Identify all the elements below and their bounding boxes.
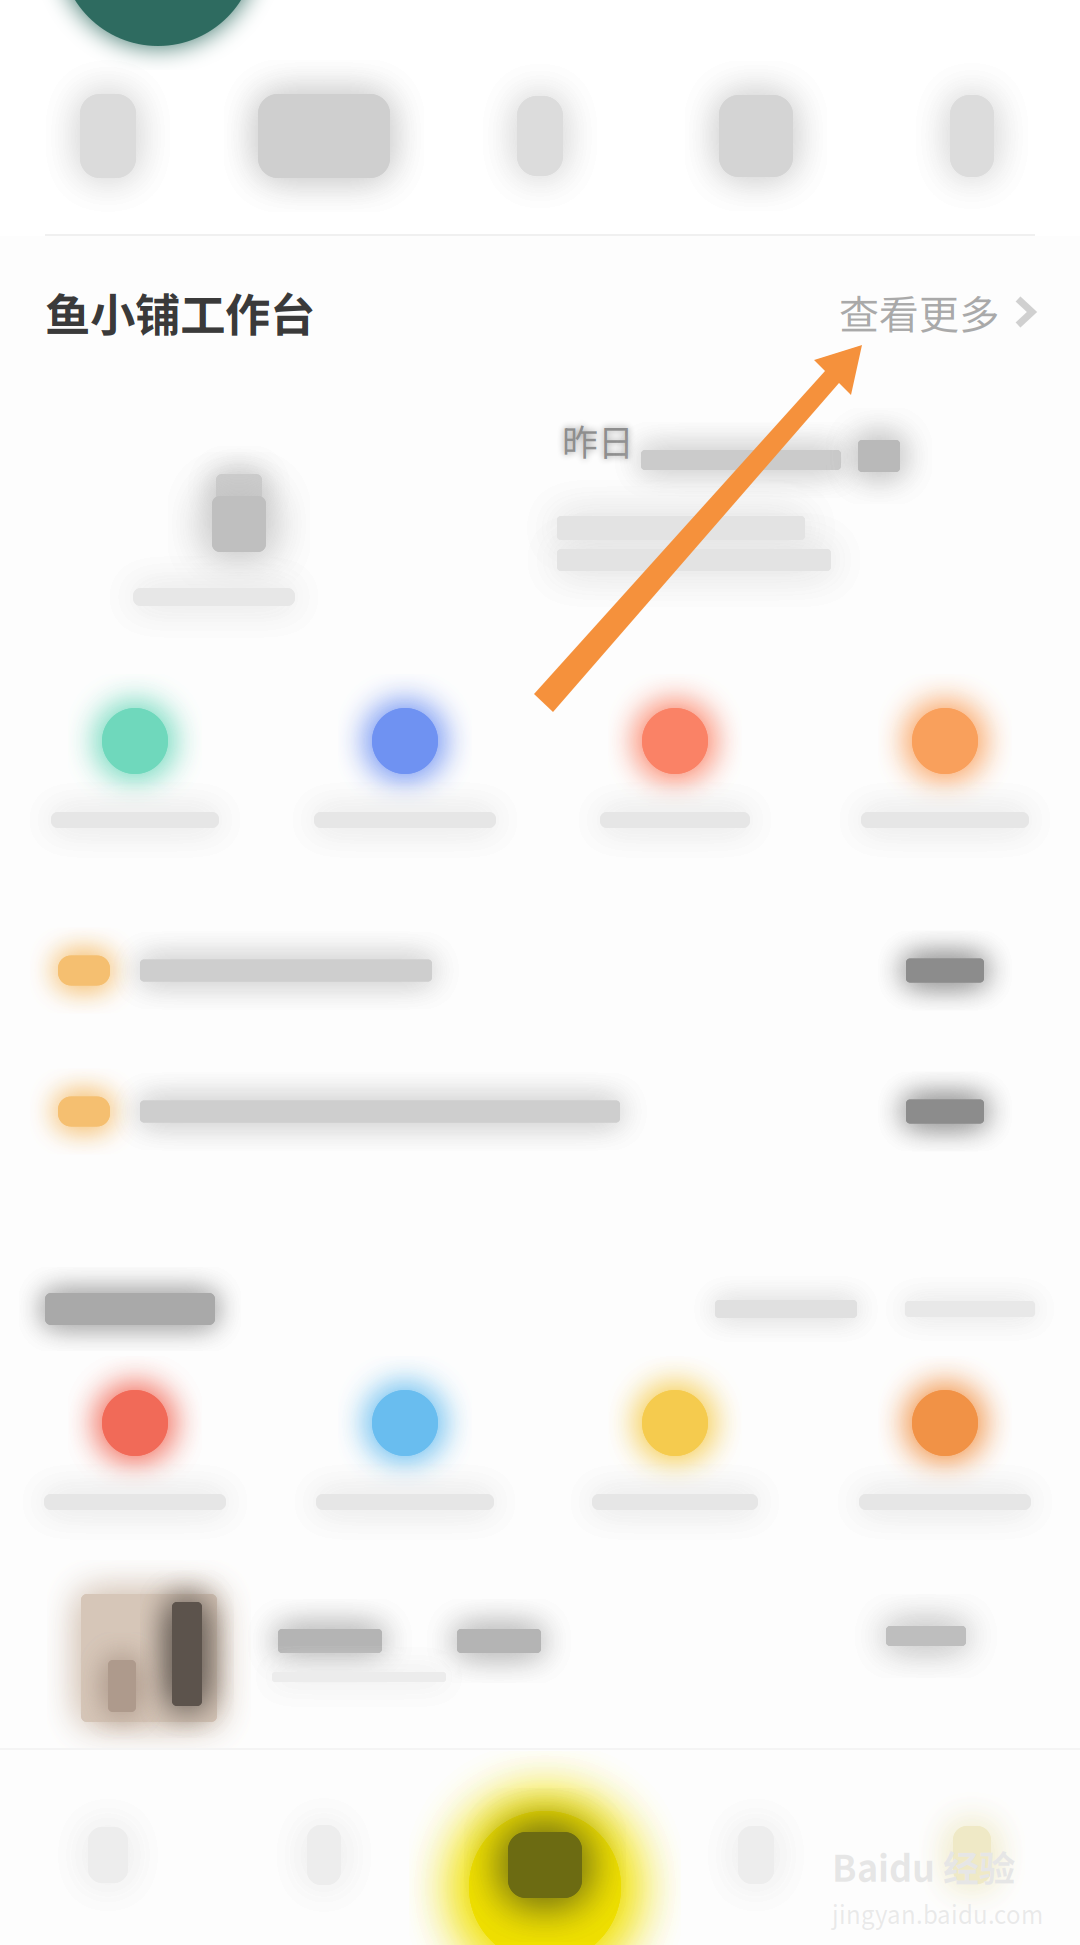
button[interactable] xyxy=(540,1364,810,1568)
staticText: 查看更多 xyxy=(839,283,999,341)
button[interactable]: 查看更多 xyxy=(839,283,1035,341)
button[interactable]: Publish xyxy=(469,1811,621,1945)
staticText: 鱼小铺工作台 xyxy=(45,279,315,345)
button[interactable]: Profile xyxy=(953,1826,991,1884)
button[interactable] xyxy=(810,676,1080,900)
staticText: Baidu 经验 xyxy=(832,1840,1015,1892)
button[interactable] xyxy=(0,676,270,900)
button[interactable] xyxy=(0,900,1080,1041)
button[interactable] xyxy=(0,1364,270,1568)
button[interactable] xyxy=(270,1364,540,1568)
button[interactable] xyxy=(810,1364,1080,1568)
button[interactable] xyxy=(0,1041,1080,1182)
button[interactable] xyxy=(0,1568,1080,1748)
button[interactable] xyxy=(540,676,810,900)
staticText: jingyan.baidu.com xyxy=(832,1896,1043,1931)
button[interactable] xyxy=(270,676,540,900)
staticText: 昨日 xyxy=(562,414,634,466)
